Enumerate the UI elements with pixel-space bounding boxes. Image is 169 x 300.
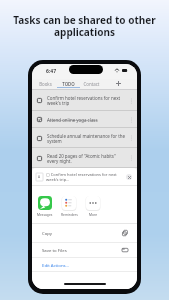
staticText: Books bbox=[34, 81, 57, 87]
staticText: TODO bbox=[57, 81, 80, 87]
staticText: Confirm hotel reservations for next week… bbox=[47, 95, 128, 106]
button[interactable]: Contact bbox=[80, 79, 103, 90]
button[interactable]: Reminders bbox=[57, 186, 81, 216]
staticText: Copy bbox=[42, 230, 53, 236]
button[interactable]: Save to Files bbox=[32, 243, 137, 257]
staticText: 6:47 bbox=[46, 68, 56, 75]
staticText: Schedule annual maintenance for the syst… bbox=[47, 133, 128, 144]
button[interactable]: Confirm hotel reservations for next week… bbox=[32, 90, 137, 111]
button[interactable]: Read 20 pages of "Atomic habits" every n… bbox=[32, 148, 137, 168]
staticText: Contact bbox=[80, 81, 103, 87]
staticText: Attend online yoga class bbox=[47, 117, 128, 123]
staticText: Edit Actions… bbox=[42, 262, 69, 268]
button[interactable]: Add task bbox=[108, 79, 128, 90]
staticText: Tasks can be shared to other application… bbox=[12, 13, 157, 39]
staticText: ▢ Confirm hotel reservations for next we… bbox=[46, 172, 124, 182]
button[interactable]: Close bbox=[126, 174, 132, 180]
staticText: Reminders bbox=[61, 212, 78, 216]
button[interactable]: Edit Actions… bbox=[32, 258, 137, 271]
button[interactable]: TODO bbox=[57, 79, 80, 90]
button[interactable]: Messages bbox=[33, 186, 57, 216]
staticText: More bbox=[89, 212, 98, 216]
button[interactable]: More bbox=[81, 186, 105, 216]
button[interactable]: Copy bbox=[32, 224, 137, 242]
button[interactable]: Attend online yoga class bbox=[32, 111, 137, 128]
button[interactable]: Schedule annual maintenance for the syst… bbox=[32, 128, 137, 148]
button[interactable]: Books bbox=[34, 79, 57, 90]
staticText: Read 20 pages of "Atomic habits" every n… bbox=[47, 153, 128, 164]
staticText: Save to Files bbox=[42, 247, 67, 253]
staticText: A bbox=[38, 175, 41, 179]
staticText: Messages bbox=[37, 212, 53, 216]
